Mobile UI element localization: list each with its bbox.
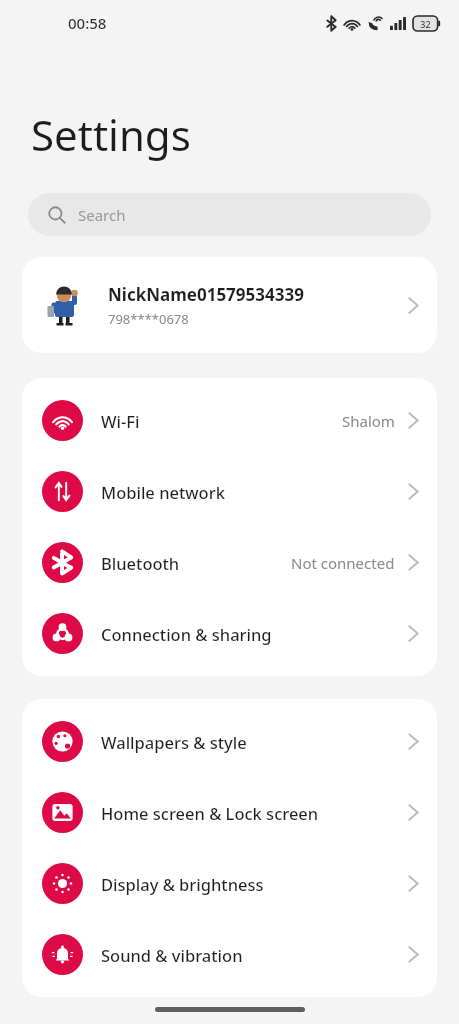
staticText: Search — [78, 205, 126, 225]
staticText: Connection & sharing — [101, 623, 272, 645]
button[interactable]: Display & brightness — [22, 848, 437, 919]
staticText: Not connected — [291, 553, 395, 573]
button[interactable]: Connection & sharing — [22, 598, 437, 669]
staticText: Mobile network — [101, 481, 225, 503]
staticText: Wallpapers & style — [101, 731, 247, 753]
staticText: 798****0678 — [108, 310, 189, 328]
button[interactable]: NickName01579534339 — [22, 257, 437, 353]
staticText: NickName01579534339 — [108, 283, 304, 306]
staticText: Settings — [31, 106, 191, 163]
button[interactable]: Bluetooth — [22, 527, 437, 598]
button[interactable]: Wallpapers & style — [22, 706, 437, 777]
staticText: 00:58 — [68, 13, 107, 33]
staticText: Wi-Fi — [101, 410, 140, 432]
staticText: Shalom — [342, 411, 395, 431]
staticText: Display & brightness — [101, 873, 264, 895]
staticText: Bluetooth — [101, 552, 180, 574]
button[interactable]: Mobile network — [22, 456, 437, 527]
staticText: Home screen & Lock screen — [101, 802, 319, 824]
staticText: 32 — [420, 18, 431, 30]
button[interactable]: Home screen & Lock screen — [22, 777, 437, 848]
button[interactable]: Wi-Fi — [22, 385, 437, 456]
button[interactable]: Sound & vibration — [22, 919, 437, 990]
staticText: Sound & vibration — [101, 944, 243, 966]
button[interactable]: Search — [28, 193, 431, 236]
